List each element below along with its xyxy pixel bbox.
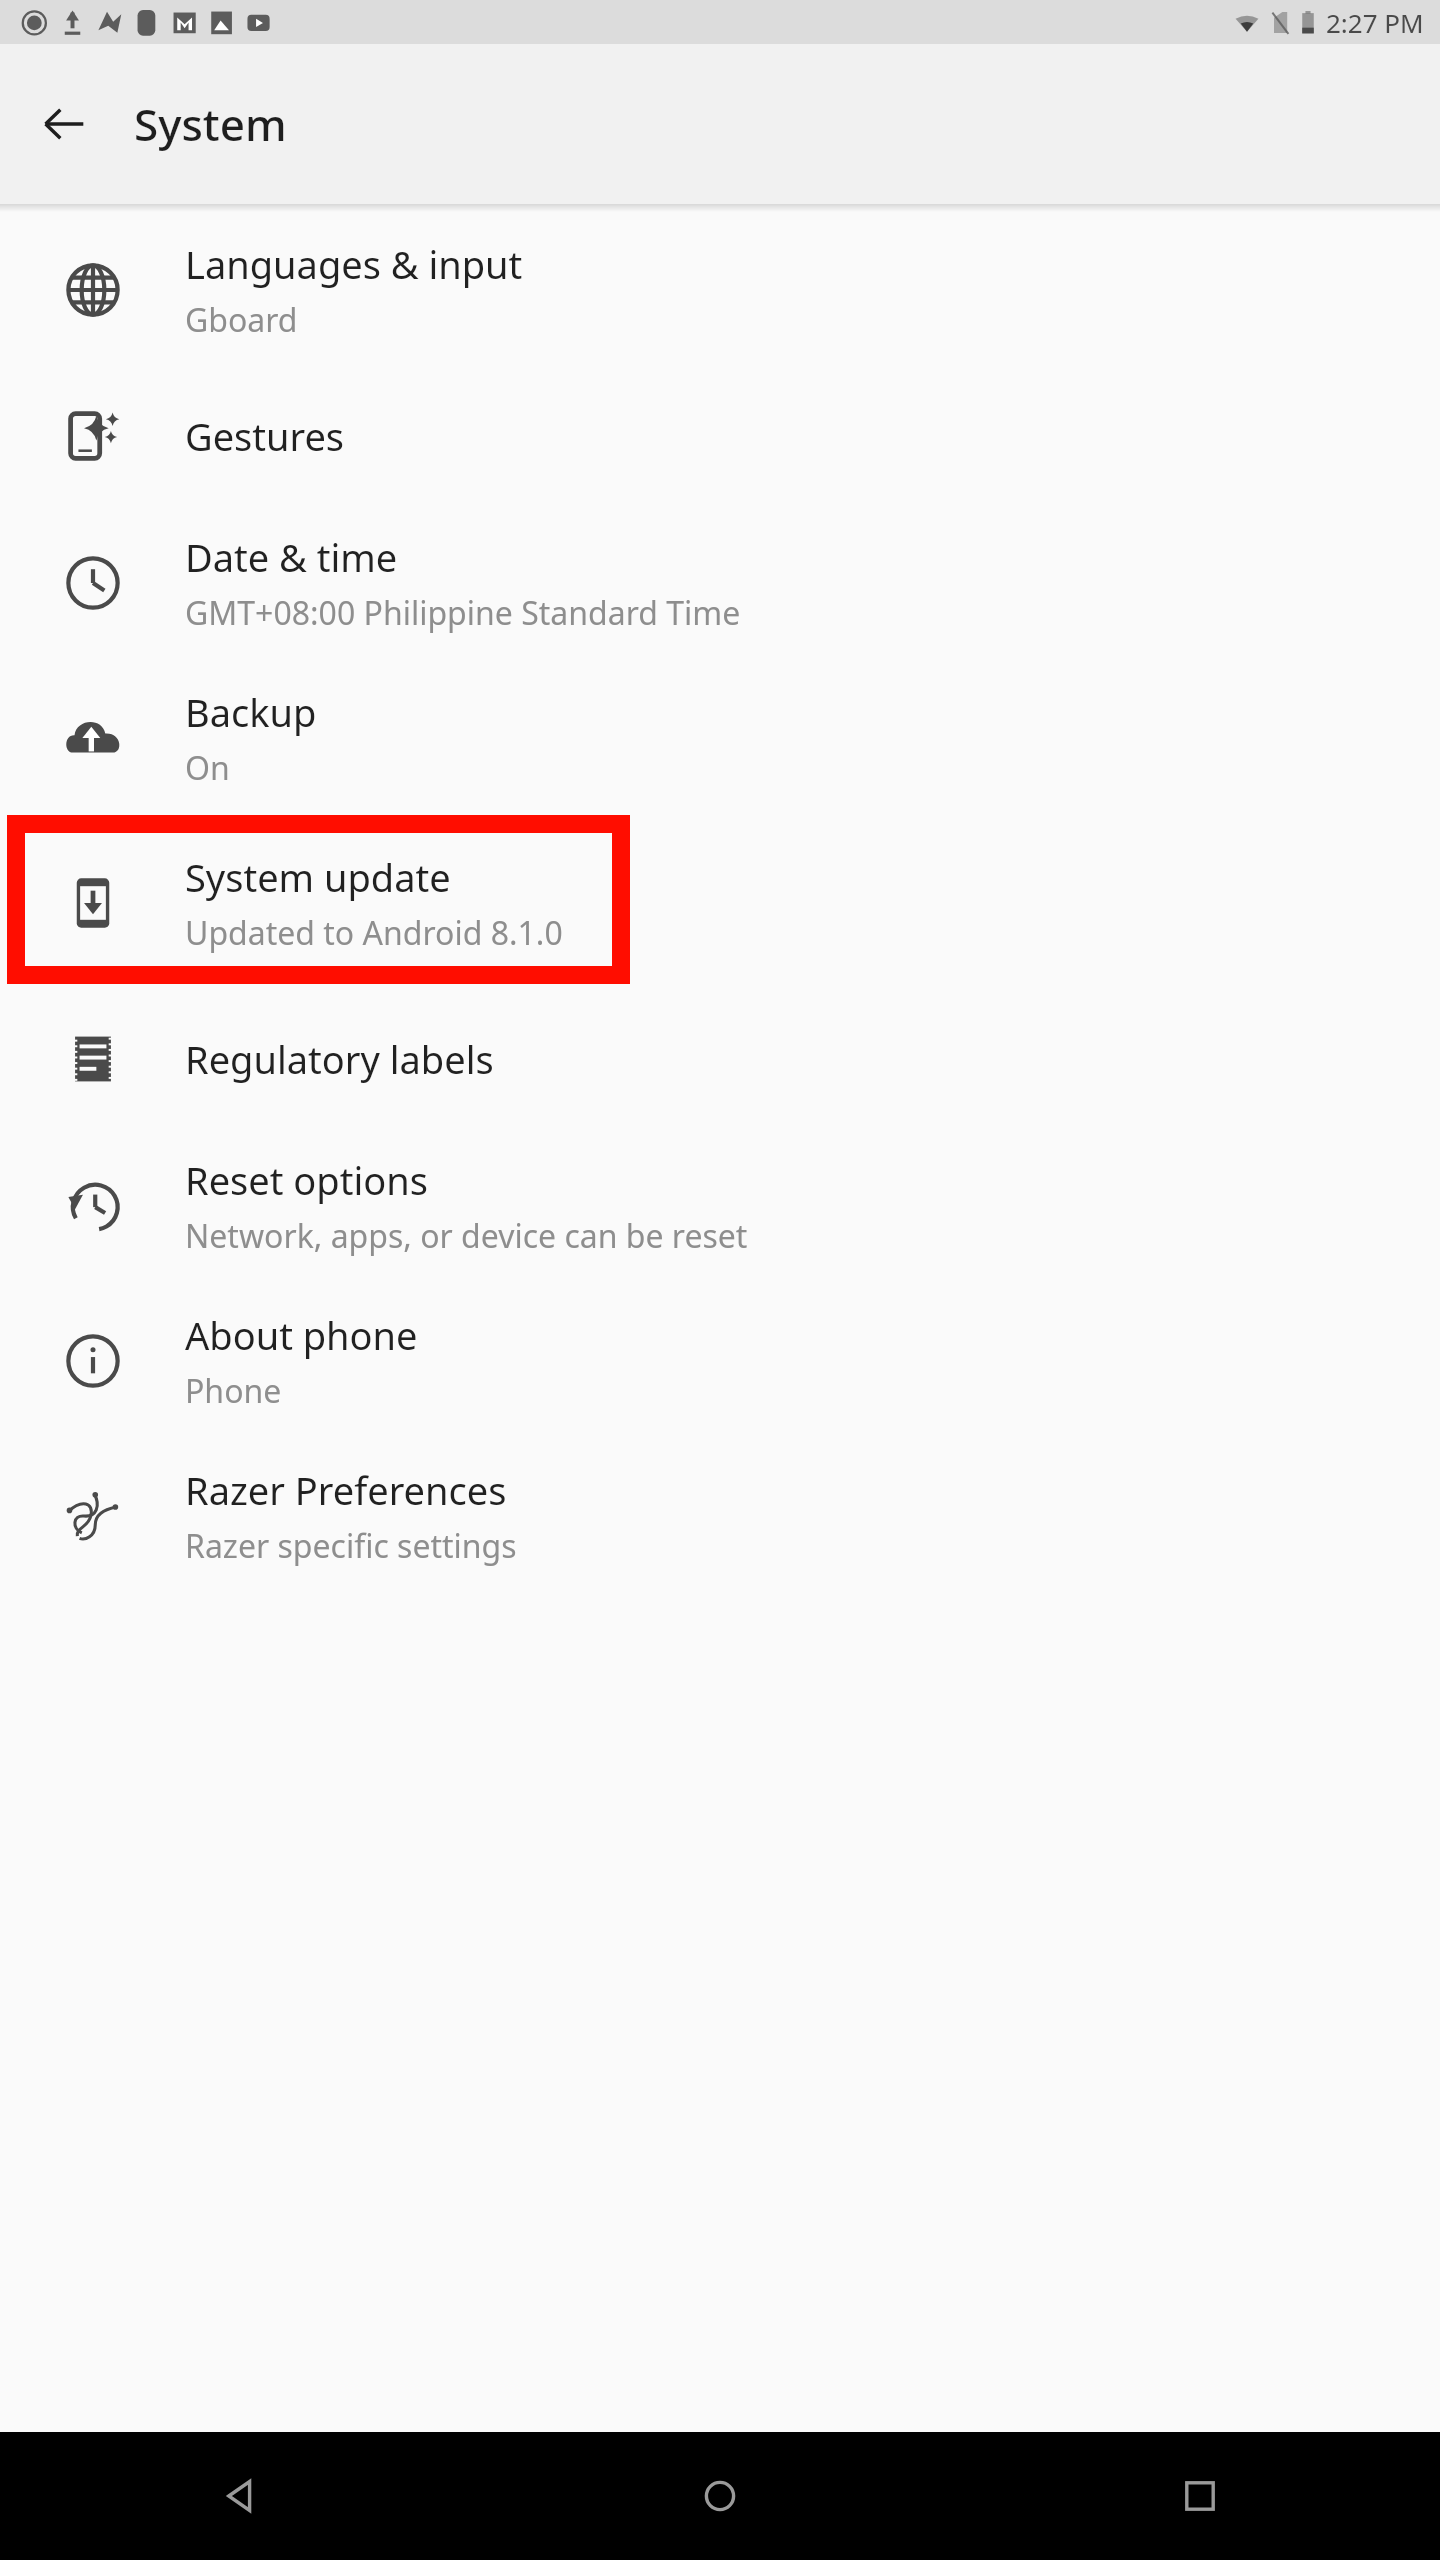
staticText: On [185, 746, 230, 790]
button[interactable]: Back [0, 2432, 480, 2560]
button[interactable]: Recent apps [960, 2432, 1440, 2560]
button[interactable]: Reset options [0, 1128, 1440, 1283]
staticText: System [134, 94, 287, 154]
staticText: Razer Preferences [185, 1464, 507, 1516]
staticText: Regulatory labels [185, 1033, 494, 1085]
staticText: 2:27 PM [1326, 5, 1424, 40]
button[interactable]: Gestures [0, 367, 1440, 505]
button[interactable]: Backup [0, 660, 1440, 815]
button[interactable]: System update [0, 815, 1440, 990]
button[interactable]: Home [480, 2432, 960, 2560]
staticText: Razer specific settings [185, 1524, 517, 1568]
button[interactable]: Back [22, 82, 106, 166]
staticText: About phone [185, 1309, 418, 1361]
staticText: GMT+08:00 Philippine Standard Time [185, 591, 741, 635]
button[interactable]: About phone [0, 1283, 1440, 1438]
staticText: System update [185, 851, 451, 903]
staticText: Backup [185, 686, 317, 738]
staticText: Network, apps, or device can be reset [185, 1214, 748, 1258]
button[interactable]: Languages & input [0, 212, 1440, 367]
staticText: Gestures [185, 410, 345, 462]
staticText: Reset options [185, 1154, 428, 1206]
button[interactable]: Razer Preferences [0, 1438, 1440, 1593]
staticText: Languages & input [185, 238, 523, 290]
staticText: Date & time [185, 531, 398, 583]
button[interactable]: Regulatory labels [0, 990, 1440, 1128]
staticText: Gboard [185, 298, 298, 342]
button[interactable]: Date & time [0, 505, 1440, 660]
staticText: Updated to Android 8.1.0 [185, 911, 563, 955]
staticText: Phone [185, 1369, 282, 1413]
